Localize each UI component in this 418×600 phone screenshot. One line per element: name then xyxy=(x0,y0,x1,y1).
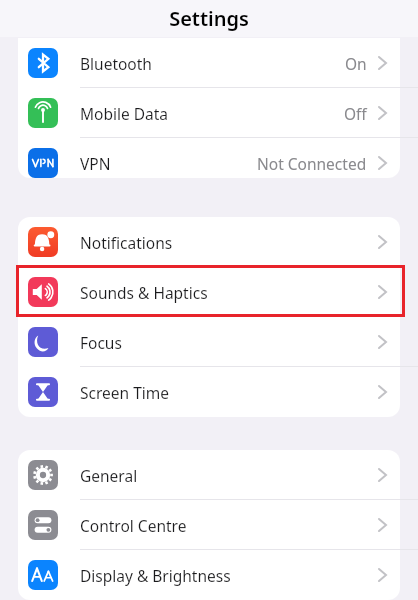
staticText: VPN xyxy=(80,153,111,174)
staticText: Off xyxy=(344,103,367,124)
button[interactable]: Display & Brightness xyxy=(18,550,400,600)
button[interactable]: VPN xyxy=(18,138,400,188)
staticText: Screen Time xyxy=(80,382,169,403)
staticText: Bluetooth xyxy=(80,53,152,74)
button[interactable]: Mobile Data xyxy=(18,88,400,138)
button[interactable]: Screen Time xyxy=(18,367,400,417)
staticText: General xyxy=(80,465,138,486)
button[interactable]: Focus xyxy=(18,317,400,367)
button[interactable]: Control Centre xyxy=(18,500,400,550)
button[interactable]: Bluetooth xyxy=(18,38,400,88)
staticText: Notifications xyxy=(80,232,173,253)
staticText: Settings xyxy=(0,5,418,32)
staticText: Mobile Data xyxy=(80,103,169,124)
staticText: Sounds & Haptics xyxy=(80,282,208,303)
staticText: Not Connected xyxy=(257,153,367,174)
button[interactable]: Notifications xyxy=(18,217,400,267)
button[interactable]: Sounds & Haptics xyxy=(18,267,400,317)
staticText: Control Centre xyxy=(80,515,187,536)
staticText: On xyxy=(345,53,367,74)
staticText: Display & Brightness xyxy=(80,565,231,586)
staticText: Focus xyxy=(80,332,122,353)
button[interactable]: General xyxy=(18,450,400,500)
